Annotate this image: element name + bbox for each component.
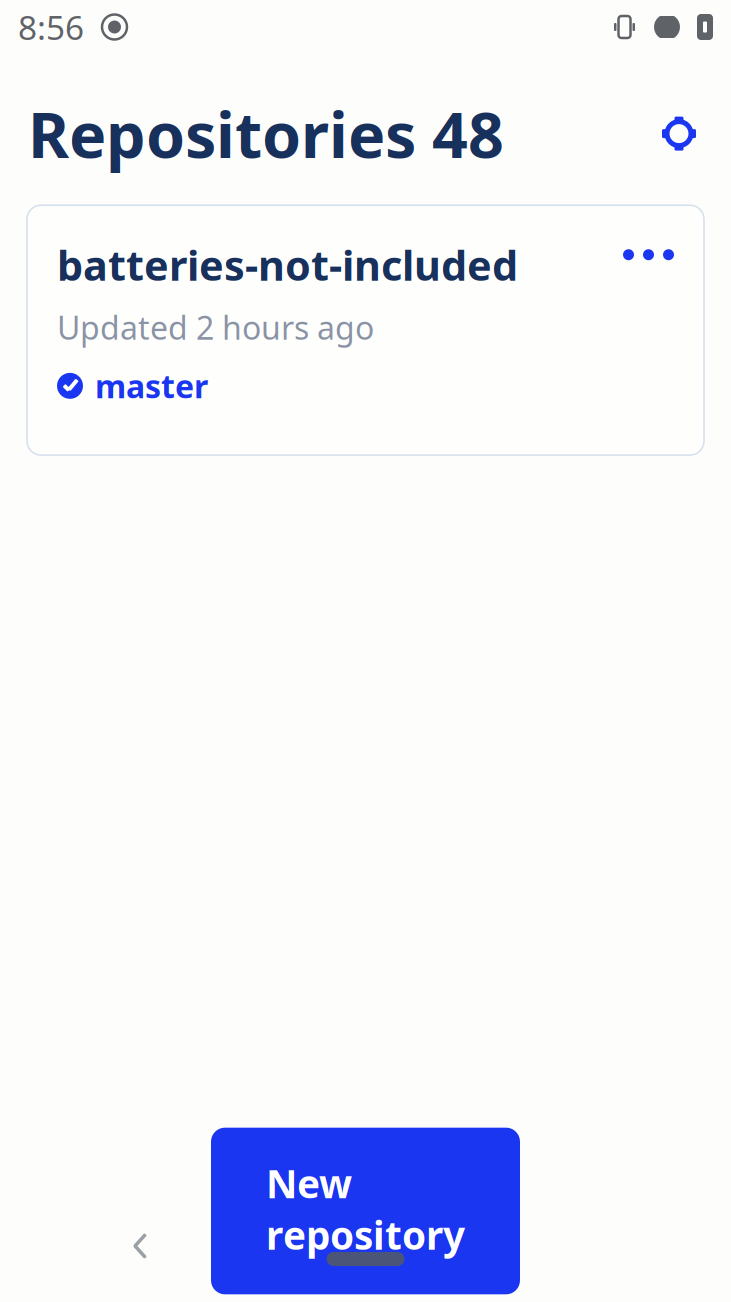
staticText: Repositories 48 — [28, 92, 504, 175]
button[interactable]: batteries-not-included — [27, 205, 704, 455]
button[interactable]: New repository — [211, 1128, 520, 1294]
staticText: 8:56 — [18, 5, 84, 49]
staticText: batteries-not-included — [57, 237, 518, 292]
staticText: master — [95, 365, 208, 407]
staticText: Updated 2 hours ago — [57, 306, 374, 349]
button[interactable]: Back — [105, 1211, 175, 1281]
button[interactable]: Settings — [649, 104, 709, 164]
staticText: New repository — [266, 1158, 465, 1260]
